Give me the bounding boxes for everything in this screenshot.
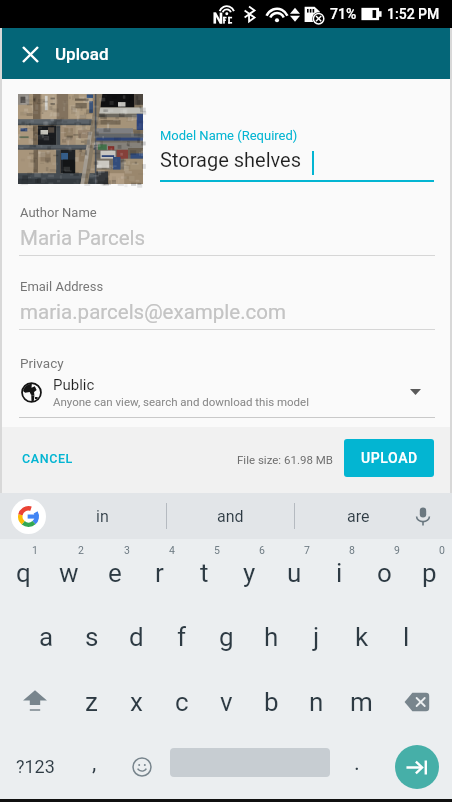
staticText: Public	[53, 376, 95, 394]
staticText: y	[243, 558, 256, 588]
staticText: p	[422, 558, 437, 588]
staticText: Upload	[55, 44, 109, 64]
button[interactable]: in	[38, 493, 166, 539]
staticText: 3	[124, 544, 130, 556]
staticText: 6	[259, 544, 265, 556]
staticText: Privacy	[20, 355, 64, 371]
button[interactable]: i	[317, 539, 362, 604]
staticText: 7	[304, 544, 310, 556]
button[interactable]: Backspace	[384, 669, 452, 734]
button[interactable]: w	[46, 539, 92, 604]
button[interactable]: g	[204, 604, 249, 669]
button[interactable]: x	[114, 669, 159, 734]
staticText: l	[403, 622, 410, 652]
staticText: q	[16, 558, 31, 588]
staticText: h	[264, 622, 279, 652]
staticText: are	[347, 507, 370, 526]
button[interactable]: are	[295, 493, 422, 539]
staticText: f	[177, 622, 187, 652]
button[interactable]: p	[407, 539, 452, 604]
button[interactable]: and	[167, 493, 294, 539]
button[interactable]: c	[159, 669, 204, 734]
button[interactable]: f	[159, 604, 204, 669]
staticText: maria.parcels@example.com	[20, 300, 286, 324]
staticText: r	[155, 558, 164, 588]
staticText: x	[130, 687, 143, 717]
staticText: e	[108, 558, 122, 588]
staticText: 8	[349, 544, 355, 556]
staticText: c	[175, 687, 189, 717]
button[interactable]: q	[0, 539, 46, 604]
button[interactable]: n	[294, 669, 339, 734]
button[interactable]: h	[249, 604, 294, 669]
button[interactable]: b	[249, 669, 294, 734]
staticText: in	[96, 507, 109, 526]
staticText: d	[129, 622, 144, 652]
staticText: o	[377, 558, 392, 588]
button[interactable]: CANCEL	[10, 441, 85, 476]
staticText: and	[217, 507, 244, 526]
button[interactable]: Google	[11, 499, 46, 534]
staticText: s	[85, 622, 99, 652]
button[interactable]: k	[339, 604, 384, 669]
button[interactable]: l	[384, 604, 429, 669]
staticText: 5	[214, 544, 220, 556]
button[interactable]: o	[362, 539, 407, 604]
staticText: 1	[32, 544, 38, 556]
staticText: b	[264, 687, 279, 717]
button[interactable]: Close	[8, 32, 52, 76]
button[interactable]: .	[333, 734, 381, 799]
button[interactable]: d	[114, 604, 159, 669]
staticText: a	[39, 622, 54, 652]
button[interactable]: ,	[70, 734, 118, 799]
staticText: ?123	[16, 756, 55, 777]
button[interactable]: v	[204, 669, 249, 734]
staticText: .	[354, 750, 360, 776]
staticText: j	[313, 622, 320, 652]
staticText: k	[355, 622, 369, 652]
button[interactable]: UPLOAD	[344, 439, 434, 477]
staticText: w	[59, 558, 79, 588]
staticText: Storage shelves	[160, 148, 301, 171]
staticText: 71%	[330, 6, 357, 22]
button[interactable]: a	[24, 604, 69, 669]
button[interactable]: Emoji	[118, 734, 166, 799]
staticText: v	[220, 687, 233, 717]
staticText: UPLOAD	[361, 450, 418, 466]
staticText: CANCEL	[22, 451, 73, 466]
staticText: i	[336, 558, 343, 588]
button[interactable]: ?123	[0, 734, 70, 799]
staticText: Maria Parcels	[20, 226, 146, 250]
button[interactable]: j	[294, 604, 339, 669]
staticText: Model Name (Required)	[160, 128, 298, 143]
button[interactable]: z	[69, 669, 114, 734]
button[interactable]: s	[69, 604, 114, 669]
staticText: File size: 61.98 MB	[237, 453, 333, 466]
button[interactable]: Space	[166, 734, 333, 799]
button[interactable]: e	[92, 539, 137, 604]
staticText: n	[309, 687, 324, 717]
staticText: Author Name	[20, 205, 97, 220]
staticText: z	[85, 687, 98, 717]
staticText: 9	[394, 544, 400, 556]
staticText: u	[287, 558, 302, 588]
button[interactable]: Shift	[0, 669, 69, 734]
staticText: Anyone can view, search and download thi…	[53, 395, 309, 408]
staticText: 2	[78, 544, 84, 556]
button[interactable]: u	[272, 539, 317, 604]
staticText: 1:52 PM	[387, 6, 440, 22]
button[interactable]: Voice input	[406, 499, 440, 533]
button[interactable]: t	[182, 539, 227, 604]
staticText: 0	[439, 544, 445, 556]
button[interactable]: Next	[381, 734, 452, 799]
button[interactable]: r	[137, 539, 182, 604]
staticText: m	[350, 687, 373, 717]
button[interactable]: m	[339, 669, 384, 734]
staticText: 4	[169, 544, 175, 556]
button[interactable]: y	[227, 539, 272, 604]
button[interactable]: Public	[21, 372, 421, 412]
staticText: Email Address	[20, 279, 104, 294]
staticText: ,	[92, 750, 97, 776]
staticText: g	[219, 622, 234, 652]
staticText: t	[200, 558, 209, 588]
